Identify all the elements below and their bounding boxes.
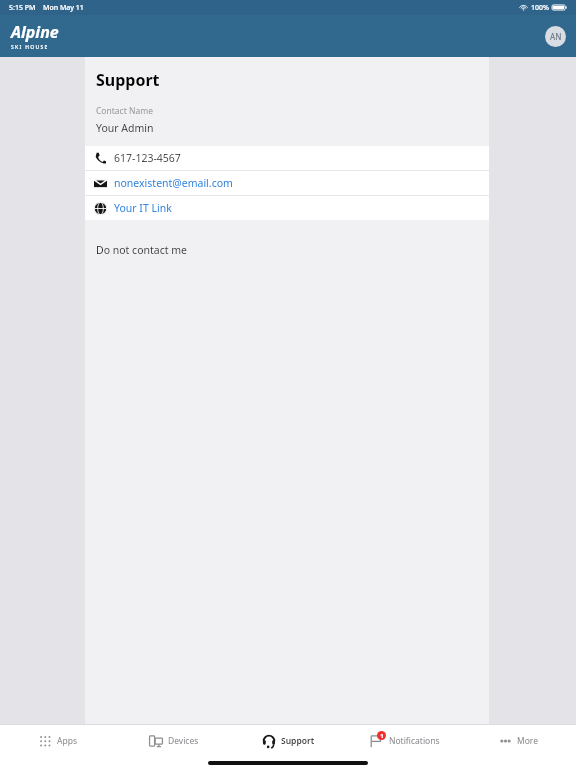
button[interactable]: 1	[346, 725, 461, 757]
staticText: nonexistent@email.com	[114, 176, 233, 190]
staticText: 5:15 PM	[9, 3, 36, 13]
button[interactable]: Do not contact me	[85, 237, 489, 263]
staticText: AN	[550, 31, 562, 42]
staticText: Notifications	[389, 735, 440, 747]
button[interactable]: Open link	[85, 196, 489, 220]
staticText: 617-123-4567	[114, 151, 181, 165]
staticText: Do not contact me	[96, 243, 187, 257]
staticText: Your Admin	[96, 121, 154, 135]
button[interactable]: Devices	[116, 725, 231, 757]
staticText: Mon May 11	[43, 3, 84, 13]
button[interactable]: Support	[231, 725, 346, 757]
staticText: More	[517, 735, 538, 747]
staticText: Your IT Link	[114, 201, 172, 215]
button[interactable]: Account	[545, 26, 566, 47]
staticText: Devices	[168, 735, 199, 747]
staticText: Support	[96, 69, 160, 91]
staticText: Support	[281, 735, 315, 747]
staticText: Contact Name	[96, 105, 153, 117]
button[interactable]: Email	[85, 171, 489, 195]
button[interactable]: Call	[85, 146, 489, 170]
staticText: 1	[380, 732, 384, 740]
button[interactable]: More	[461, 725, 576, 757]
staticText: 100%	[531, 3, 549, 13]
staticText: Alpine	[11, 21, 59, 43]
button[interactable]: Apps	[0, 725, 116, 757]
staticText: Apps	[57, 735, 77, 747]
staticText: S K I H O U S E	[11, 44, 48, 51]
